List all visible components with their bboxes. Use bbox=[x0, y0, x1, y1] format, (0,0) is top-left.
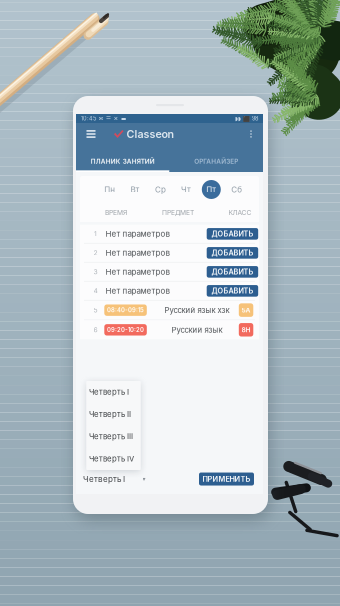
button[interactable]: ПРИМЕНИТЬ bbox=[199, 472, 254, 485]
staticText: Русский язык bbox=[171, 325, 222, 335]
staticText: ВРЕМЯ bbox=[105, 208, 127, 217]
staticText: Нет параметров bbox=[105, 286, 170, 296]
button[interactable]: Четверть I bbox=[80, 469, 152, 489]
staticText: Четверть I bbox=[83, 474, 125, 484]
staticText: Нет параметров bbox=[105, 248, 170, 258]
staticText: 09:20-10:20 bbox=[107, 326, 144, 333]
button[interactable]: Четверть III bbox=[86, 425, 140, 448]
button[interactable]: ПЛАНИК ЗАНЯТИЙ bbox=[76, 145, 169, 172]
staticText: 3 bbox=[93, 268, 97, 276]
staticText: ✕ bbox=[113, 115, 118, 122]
staticText: КЛАСС bbox=[228, 208, 251, 217]
staticText: Русский язык хзк bbox=[164, 305, 229, 315]
staticText: ПРЕДМЕТ bbox=[162, 208, 194, 217]
staticText: Четверть III bbox=[89, 432, 133, 441]
button[interactable]: 4 bbox=[80, 282, 259, 300]
staticText: ДОБАВИТЬ bbox=[211, 286, 253, 295]
button[interactable]: 5 bbox=[80, 301, 259, 320]
staticText: Четверть II bbox=[89, 410, 131, 419]
button[interactable]: Сб bbox=[227, 180, 246, 199]
staticText: ☰ bbox=[106, 115, 111, 122]
staticText: 5А bbox=[242, 306, 251, 314]
button[interactable]: 3 bbox=[80, 263, 259, 281]
staticText: ДОБАВИТЬ bbox=[211, 248, 253, 257]
button[interactable]: Чт bbox=[176, 180, 195, 199]
staticText: 08:40-09:15 bbox=[107, 307, 144, 314]
staticText: Вт bbox=[131, 185, 140, 194]
staticText: 6 bbox=[93, 326, 97, 334]
staticText: Classeon bbox=[126, 127, 174, 140]
staticText: 5 bbox=[93, 306, 97, 314]
staticText: 10:45 bbox=[81, 115, 96, 122]
button[interactable]: 2 bbox=[80, 244, 259, 262]
button[interactable]: 6 bbox=[80, 320, 259, 339]
staticText: ПЛАНИК ЗАНЯТИЙ bbox=[91, 158, 155, 165]
button[interactable]: 1 bbox=[80, 225, 259, 243]
staticText: ◗◗ ⬛ 98 bbox=[235, 115, 258, 122]
staticText: Сб bbox=[231, 185, 242, 194]
staticText: Нет параметров bbox=[105, 267, 170, 277]
staticText: ПРИМЕНИТЬ bbox=[202, 475, 250, 483]
staticText: 1 bbox=[94, 230, 97, 238]
staticText: ▾ bbox=[142, 475, 145, 482]
button[interactable]: Четверть II bbox=[86, 403, 140, 425]
staticText: Четверть I bbox=[89, 387, 129, 397]
button[interactable]: Menu bbox=[83, 123, 99, 145]
staticText: 8Н bbox=[242, 326, 251, 334]
staticText: 4 bbox=[93, 287, 97, 295]
button[interactable]: Пн bbox=[100, 180, 119, 199]
button[interactable]: Четверть IV bbox=[86, 448, 140, 470]
button[interactable]: Вт bbox=[126, 180, 145, 199]
staticText: Ср bbox=[155, 185, 166, 194]
staticText: ДОБАВИТЬ bbox=[211, 267, 253, 276]
staticText: ✉ bbox=[98, 115, 103, 122]
staticText: ▬ bbox=[121, 115, 126, 122]
staticText: ОРГАНАЙЗЕР bbox=[194, 158, 238, 165]
button[interactable]: Четверть I bbox=[86, 381, 140, 403]
staticText: Чт bbox=[181, 185, 191, 194]
button[interactable]: ОРГАНАЙЗЕР bbox=[169, 145, 263, 172]
staticText: Четверть IV bbox=[89, 454, 134, 463]
button[interactable]: Ср bbox=[151, 180, 170, 199]
staticText: 2 bbox=[93, 249, 97, 257]
staticText: ДОБАВИТЬ bbox=[211, 229, 253, 238]
staticText: Пн bbox=[104, 185, 115, 194]
button[interactable]: More options bbox=[246, 123, 256, 145]
staticText: Пт bbox=[206, 185, 216, 194]
staticText: Нет параметров bbox=[105, 229, 170, 239]
button[interactable]: Пт bbox=[202, 180, 221, 199]
